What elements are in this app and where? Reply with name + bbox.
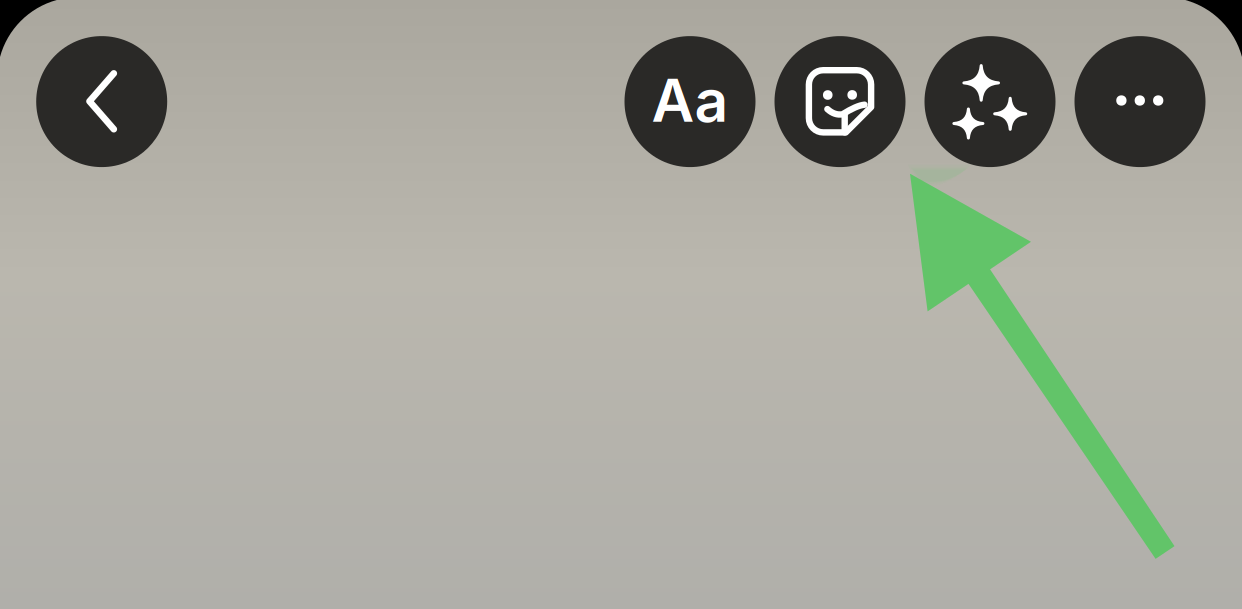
button[interactable]: Back [36, 36, 167, 167]
button[interactable]: More options [1074, 36, 1205, 167]
button[interactable]: Stickers [774, 36, 905, 167]
button[interactable]: Text [624, 36, 755, 167]
staticText: Aa [651, 65, 728, 136]
button[interactable]: Effects [924, 36, 1055, 167]
